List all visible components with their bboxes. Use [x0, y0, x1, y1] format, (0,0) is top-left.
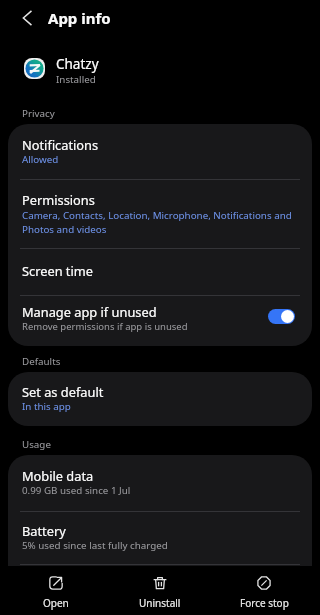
button[interactable]: Battery [8, 512, 312, 564]
staticText: Defaults [22, 355, 61, 368]
staticText: 5% used since last fully charged [22, 539, 168, 552]
staticText: Force stop [240, 596, 289, 610]
button[interactable]: Screen time [8, 249, 312, 295]
staticText: Notifications [22, 138, 99, 153]
staticText: Privacy [22, 107, 55, 120]
staticText: 0.99 GB used since 1 Jul [22, 484, 131, 497]
button[interactable]: Manage app if unused [8, 296, 312, 346]
button[interactable]: Notifications [8, 124, 312, 179]
button[interactable]: Chatzy [0, 35, 320, 96]
staticText: Chatzy [56, 57, 99, 72]
staticText: Battery [22, 524, 66, 539]
staticText: Usage [22, 438, 51, 451]
button[interactable]: Set as default [8, 372, 312, 426]
staticText: In this app [22, 400, 71, 413]
button[interactable]: Manage app if unused [268, 309, 295, 324]
button[interactable]: Force stop [212, 566, 316, 615]
staticText: Manage app if unused [22, 305, 157, 320]
staticText: Set as default [22, 385, 104, 400]
staticText: Open [43, 596, 69, 610]
staticText: Remove permissions if app is unused [22, 320, 188, 333]
button[interactable]: Mobile data [8, 455, 312, 511]
staticText: Permissions [22, 193, 95, 208]
staticText: Camera, Contacts, Location, Microphone, … [22, 208, 302, 236]
button[interactable]: Back [9, 0, 45, 35]
staticText: Uninstall [139, 596, 181, 610]
staticText: Installed [56, 72, 96, 86]
staticText: Mobile data [22, 469, 94, 484]
staticText: App info [48, 8, 111, 28]
button[interactable]: Uninstall [108, 566, 212, 615]
button[interactable]: Open [4, 566, 108, 615]
button[interactable]: Permissions [8, 180, 312, 248]
staticText: Allowed [22, 153, 59, 166]
staticText: Screen time [22, 262, 93, 279]
